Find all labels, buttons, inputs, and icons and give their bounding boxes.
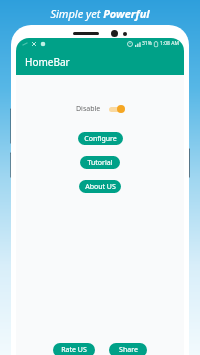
button[interactable]: Share — [109, 343, 147, 355]
staticText: Disable — [76, 104, 101, 114]
staticText: 1:08 AM — [160, 40, 179, 47]
button[interactable]: Disable — [73, 102, 128, 116]
staticText: 31% — [142, 40, 152, 47]
button[interactable]: Tutorial — [80, 156, 120, 169]
staticText: Tutorial — [87, 158, 113, 168]
staticText: HomeBar — [25, 55, 70, 69]
staticText: Configure — [84, 134, 117, 144]
staticText: Rate US — [61, 345, 87, 355]
staticText: Share — [119, 345, 138, 355]
button[interactable]: About US — [79, 180, 121, 193]
staticText: Simple yet Powerful — [50, 6, 150, 21]
staticText: About US — [85, 182, 116, 192]
button[interactable]: Configure — [78, 132, 123, 145]
button[interactable]: Rate US — [53, 343, 95, 355]
